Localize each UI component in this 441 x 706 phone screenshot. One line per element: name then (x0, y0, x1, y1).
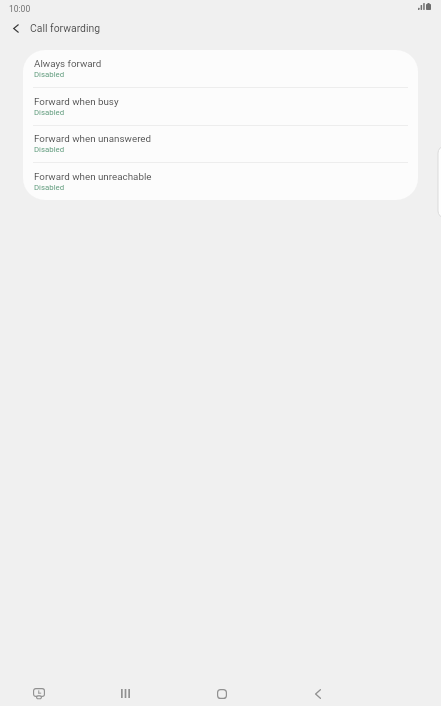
staticText: Call forwarding (30, 22, 101, 34)
button[interactable]: Screen timeout (20, 681, 58, 706)
button[interactable]: Back (298, 681, 338, 706)
staticText: Forward when busy (34, 96, 119, 107)
staticText: Forward when unanswered (34, 133, 152, 144)
button[interactable]: Navigate up (4, 16, 28, 44)
staticText: Disabled (34, 108, 65, 117)
button[interactable]: Always forward (23, 50, 418, 88)
staticText: Forward when unreachable (34, 171, 152, 182)
button[interactable]: Forward when unanswered (23, 125, 418, 163)
button[interactable]: Forward when busy (23, 88, 418, 126)
staticText: Disabled (34, 183, 65, 192)
staticText: Disabled (34, 145, 65, 154)
staticText: 10:00 (9, 4, 31, 14)
button[interactable]: Home (202, 681, 242, 706)
staticText: Always forward (34, 58, 102, 69)
staticText: Disabled (34, 70, 65, 79)
button[interactable]: Recent apps (105, 681, 145, 706)
button[interactable]: Forward when unreachable (23, 163, 418, 200)
